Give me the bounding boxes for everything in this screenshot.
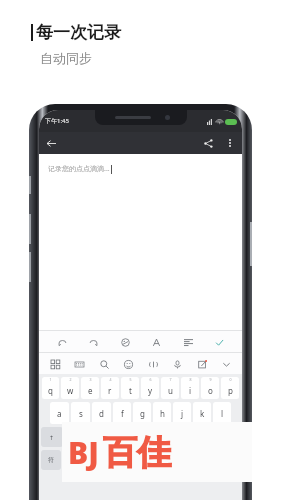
button[interactable]: c	[108, 427, 127, 447]
button[interactable]: Keyboard	[70, 355, 88, 373]
button[interactable]: Numbers	[63, 450, 85, 470]
button[interactable]: Redo	[84, 333, 102, 351]
staticText: 123	[69, 456, 80, 464]
button[interactable]: f	[113, 402, 131, 424]
staticText: 9	[209, 377, 212, 382]
button[interactable]: h	[153, 402, 171, 424]
staticText: d	[99, 408, 104, 419]
staticText: s	[79, 408, 83, 419]
button[interactable]: a	[50, 402, 69, 424]
staticText: g	[140, 408, 145, 419]
staticText: b	[159, 432, 164, 443]
staticText: 6	[149, 377, 152, 382]
staticText: 百佳	[103, 431, 171, 474]
button[interactable]: j	[173, 402, 191, 424]
staticText: h	[160, 408, 165, 419]
staticText: ↑	[49, 434, 55, 441]
staticText: 4	[109, 377, 112, 382]
staticText: 下午1:45	[45, 117, 69, 125]
staticText: z	[74, 432, 78, 443]
staticText: BJ	[68, 432, 99, 473]
button[interactable]: Voice	[144, 355, 162, 373]
staticText: p	[228, 385, 233, 396]
staticText: k	[200, 408, 205, 419]
button[interactable]: Align	[179, 333, 197, 351]
button[interactable]: Emoji	[119, 355, 137, 373]
staticText: a	[57, 408, 62, 419]
button[interactable]: 5	[121, 377, 139, 399]
button[interactable]: 0	[221, 377, 239, 399]
staticText: 2	[69, 377, 72, 382]
button[interactable]: Shift	[41, 427, 63, 447]
button[interactable]: Symbols	[41, 450, 61, 470]
button[interactable]: 6	[141, 377, 159, 399]
staticText: e	[88, 385, 93, 396]
staticText: o	[208, 385, 213, 396]
staticText: 符	[48, 456, 54, 464]
button[interactable]: Font	[147, 333, 165, 351]
button[interactable]: g	[133, 402, 151, 424]
staticText: v	[137, 432, 142, 443]
button[interactable]: b	[151, 427, 171, 447]
button[interactable]: Microphone	[168, 355, 186, 373]
button[interactable]: v	[129, 427, 149, 447]
staticText: 3	[89, 377, 92, 382]
button[interactable]: 4	[101, 377, 119, 399]
button[interactable]: Share	[200, 135, 216, 151]
staticText: 记录您的点点滴滴...	[48, 164, 110, 174]
staticText: u	[168, 385, 173, 396]
button[interactable]: 2	[61, 377, 79, 399]
button[interactable]: 3	[81, 377, 99, 399]
button[interactable]: 9	[201, 377, 219, 399]
staticText: 1	[49, 377, 52, 382]
staticText: 5	[129, 377, 132, 382]
staticText: t	[129, 385, 132, 396]
staticText: r	[108, 385, 112, 396]
staticText: 0	[229, 377, 232, 382]
button[interactable]: z	[66, 427, 85, 447]
staticText: 8	[189, 377, 192, 382]
staticText: 自动同步	[40, 50, 92, 66]
staticText: w	[67, 385, 74, 396]
button[interactable]: 7	[161, 377, 179, 399]
staticText: c	[116, 432, 120, 443]
staticText: y	[148, 385, 153, 396]
button[interactable]: Search	[95, 355, 113, 373]
button[interactable]: Collapse	[217, 355, 235, 373]
staticText: q	[48, 385, 53, 396]
button[interactable]: 1	[42, 377, 59, 399]
staticText: 7	[169, 377, 172, 382]
staticText: f	[121, 408, 124, 419]
button[interactable]: Undo	[53, 333, 71, 351]
staticText: x	[94, 432, 99, 443]
button[interactable]	[105, 450, 194, 470]
button[interactable]: k	[193, 402, 211, 424]
staticText: j	[181, 408, 184, 419]
button[interactable]: Comma	[87, 450, 103, 470]
button[interactable]: Notes	[193, 355, 211, 373]
button[interactable]: 8	[181, 377, 199, 399]
staticText: l	[221, 408, 224, 419]
button[interactable]: l	[213, 402, 231, 424]
button[interactable]: Done	[210, 333, 228, 351]
button[interactable]: s	[71, 402, 90, 424]
staticText: i	[189, 385, 192, 396]
button[interactable]: d	[92, 402, 111, 424]
button[interactable]: Back	[43, 135, 59, 151]
button[interactable]: Apps	[46, 355, 64, 373]
staticText: 每一次记录	[36, 22, 121, 43]
button[interactable]: x	[87, 427, 106, 447]
button[interactable]: More options	[222, 135, 238, 151]
button[interactable]: Insert image	[116, 333, 134, 351]
